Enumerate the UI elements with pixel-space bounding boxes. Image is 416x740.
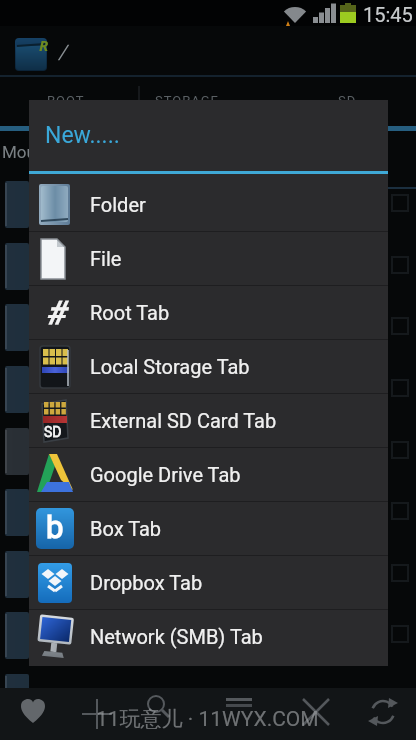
button[interactable] (333, 688, 416, 740)
button[interactable] (0, 688, 84, 740)
staticText: / (58, 40, 67, 63)
staticText: Network (SMB) Tab (90, 625, 263, 648)
button[interactable] (167, 688, 250, 740)
staticText: # (45, 294, 65, 332)
staticText: ROOT (47, 93, 85, 108)
staticText: R (39, 35, 49, 55)
button[interactable]: Google Drive Tab (29, 448, 388, 501)
button[interactable]: SD (29, 394, 388, 447)
button[interactable]: File (29, 232, 388, 285)
button[interactable]: # (29, 286, 388, 339)
button[interactable]: Folder (29, 177, 388, 231)
button[interactable] (250, 688, 333, 740)
staticText: Box Tab (90, 517, 162, 540)
staticText: SD (44, 424, 62, 440)
staticText: Dropbox Tab (90, 571, 203, 594)
button[interactable]: b (29, 502, 388, 555)
button[interactable] (84, 688, 167, 740)
button[interactable]: Local Storage Tab (29, 340, 388, 393)
staticText: Google Drive Tab (90, 463, 241, 486)
staticText: External SD Card Tab (90, 409, 277, 432)
staticText: 15:45 (363, 3, 413, 26)
staticText: New..... (45, 122, 120, 149)
staticText: Mou (2, 142, 36, 162)
staticText: STORAGE (155, 93, 219, 108)
button[interactable]: Network (SMB) Tab (29, 610, 388, 663)
staticText: Local Storage Tab (90, 355, 250, 378)
staticText: File (90, 247, 122, 270)
staticText: Folder (90, 193, 146, 216)
staticText: b (46, 509, 64, 545)
staticText: 11玩意儿 · 11WYX.COM (96, 706, 319, 732)
staticText: Root Tab (90, 301, 170, 324)
button[interactable]: Dropbox Tab (29, 556, 388, 609)
staticText: SD (338, 93, 357, 108)
